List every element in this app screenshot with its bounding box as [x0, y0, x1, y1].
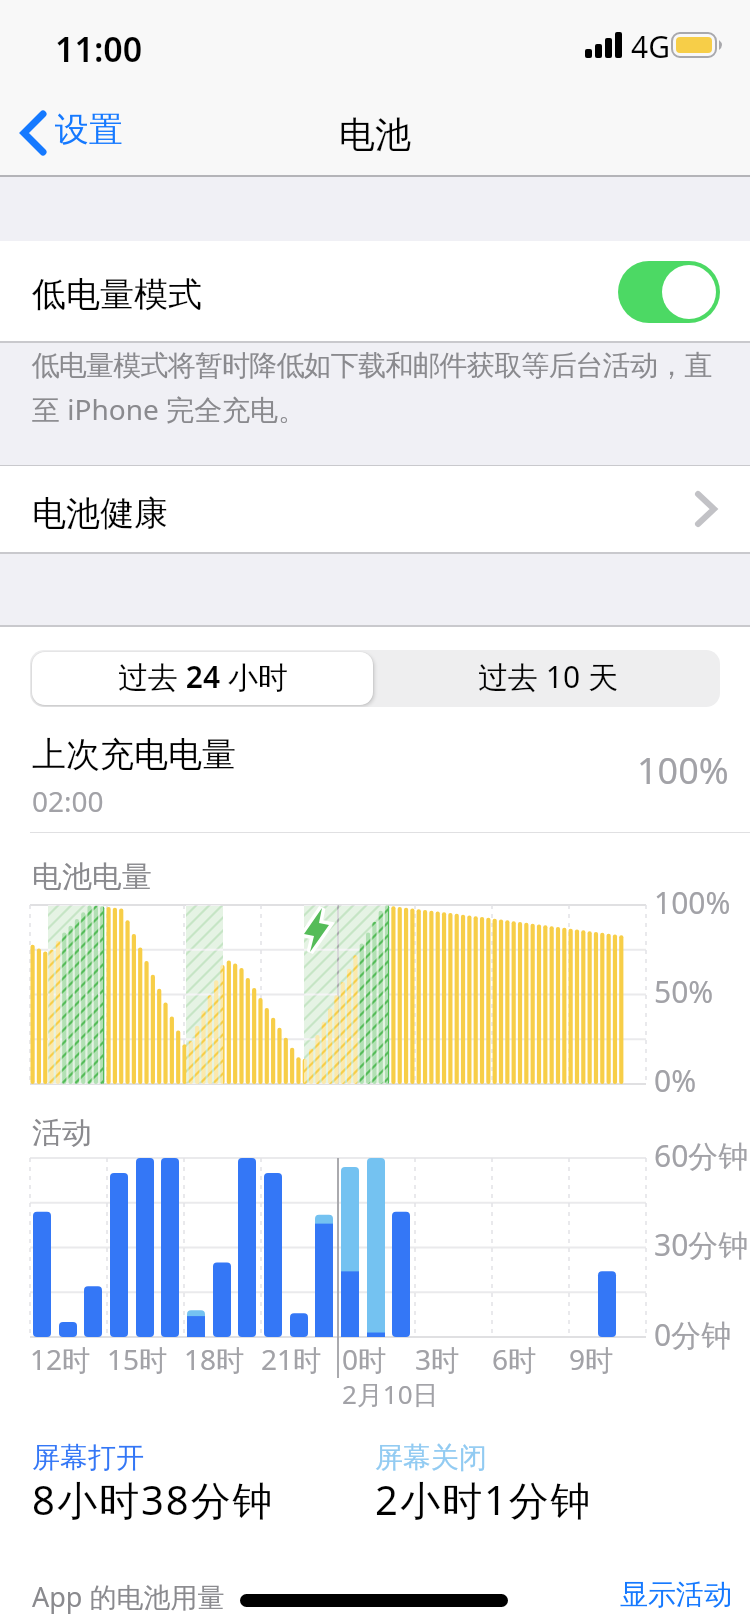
staticText: 0%: [654, 1060, 697, 1101]
button[interactable]: 电池健康: [0, 466, 750, 552]
staticText: 活动: [32, 1114, 92, 1152]
staticText: 11:00: [55, 26, 143, 72]
staticText: 02:00: [32, 782, 104, 820]
button[interactable]: [32, 652, 373, 705]
staticText: 100%: [637, 746, 729, 795]
staticText: 21时: [261, 1340, 322, 1378]
staticText: 15时: [107, 1340, 168, 1378]
staticText: 9时: [569, 1340, 614, 1378]
staticText: 6时: [492, 1340, 537, 1378]
staticText: 0时: [342, 1340, 387, 1378]
staticText: 2月10日: [342, 1376, 439, 1412]
staticText: 8小时38分钟: [32, 1472, 275, 1527]
staticText: 低电量模式将暂时降低如下载和邮件获取等后台活动，直: [32, 348, 712, 383]
staticText: 12时: [30, 1340, 91, 1378]
staticText: 电池: [339, 112, 411, 157]
staticText: 60分钟: [654, 1135, 749, 1176]
staticText: 4G: [631, 26, 670, 67]
staticText: 50%: [654, 971, 714, 1012]
staticText: 2小时1分钟: [375, 1472, 593, 1527]
button[interactable]: [373, 650, 720, 707]
button[interactable]: [618, 261, 720, 323]
staticText: 100%: [654, 882, 731, 923]
staticText: 过去 24 小时: [118, 656, 288, 697]
button[interactable]: 设置: [50, 108, 160, 158]
staticText: 设置: [55, 108, 123, 151]
staticText: 30分钟: [654, 1224, 749, 1265]
staticText: 电池电量: [32, 858, 152, 896]
staticText: 3时: [415, 1340, 460, 1378]
button[interactable]: 低电量模式: [0, 241, 750, 341]
button[interactable]: 显示活动: [615, 1572, 735, 1612]
staticText: 过去 10 天: [478, 656, 618, 697]
staticText: 显示活动: [620, 1577, 732, 1612]
staticText: 18时: [184, 1340, 245, 1378]
staticText: App 的电池用量: [32, 1578, 225, 1615]
staticText: 低电量模式: [32, 273, 202, 316]
staticText: 上次充电电量: [32, 733, 236, 776]
staticText: 至 iPhone 完全充电。: [32, 390, 307, 428]
staticText: 屏幕关闭: [375, 1440, 487, 1475]
staticText: 0分钟: [654, 1314, 732, 1355]
staticText: 电池健康: [32, 492, 168, 535]
staticText: 屏幕打开: [32, 1440, 144, 1475]
